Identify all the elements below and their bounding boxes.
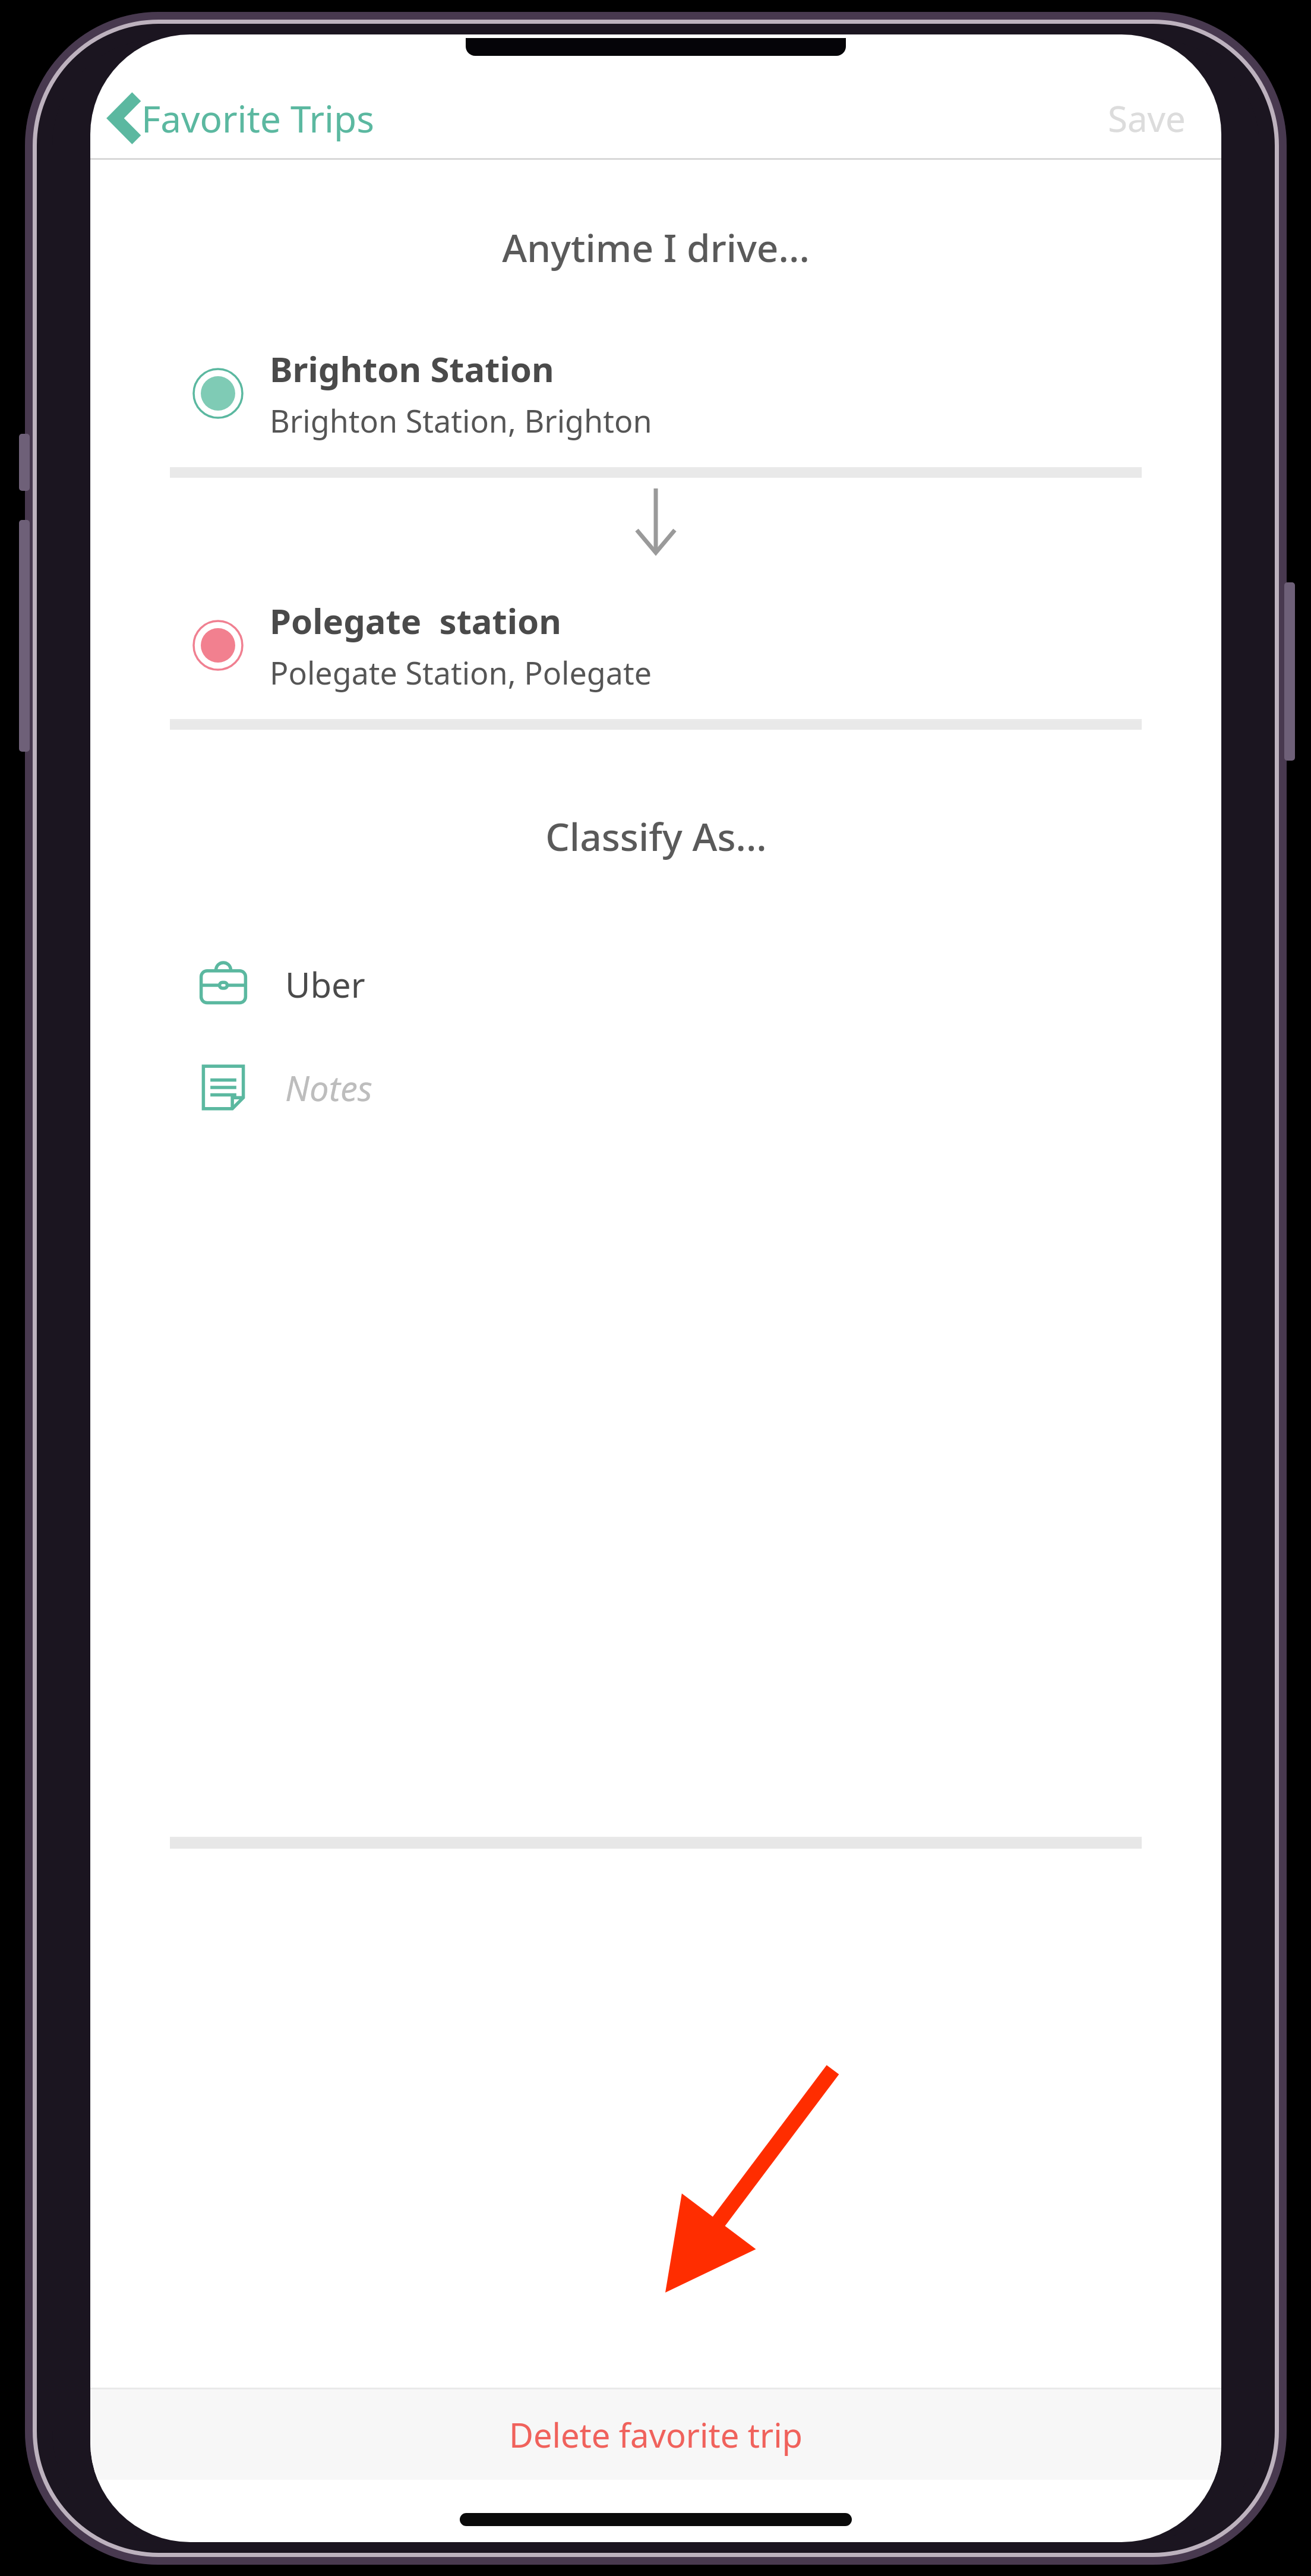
staticText: Uber	[285, 961, 365, 1008]
staticText: Polegate Station, Polegate	[270, 651, 652, 693]
staticText: Favorite Trips	[141, 93, 374, 143]
staticText: Classify As...	[545, 811, 767, 862]
staticText: Brighton Station	[270, 345, 554, 392]
button[interactable]: Notes	[166, 1043, 1145, 1132]
staticText: Brighton Station, Brighton	[270, 399, 652, 442]
button[interactable]: Uber	[166, 939, 1145, 1029]
button[interactable]: Delete favorite trip	[90, 2389, 1221, 2480]
staticText: Notes	[285, 1064, 372, 1111]
button[interactable]: Favorite Trips	[105, 85, 381, 152]
staticText: Polegate station	[270, 597, 562, 644]
staticText: Delete favorite trip	[509, 2412, 803, 2457]
staticText: Anytime I drive...	[502, 222, 810, 273]
staticText: Save	[1108, 94, 1186, 143]
button[interactable]: Save	[1098, 84, 1195, 152]
button[interactable]: Polegate station	[166, 572, 1145, 719]
button[interactable]: Brighton Station	[166, 320, 1145, 467]
